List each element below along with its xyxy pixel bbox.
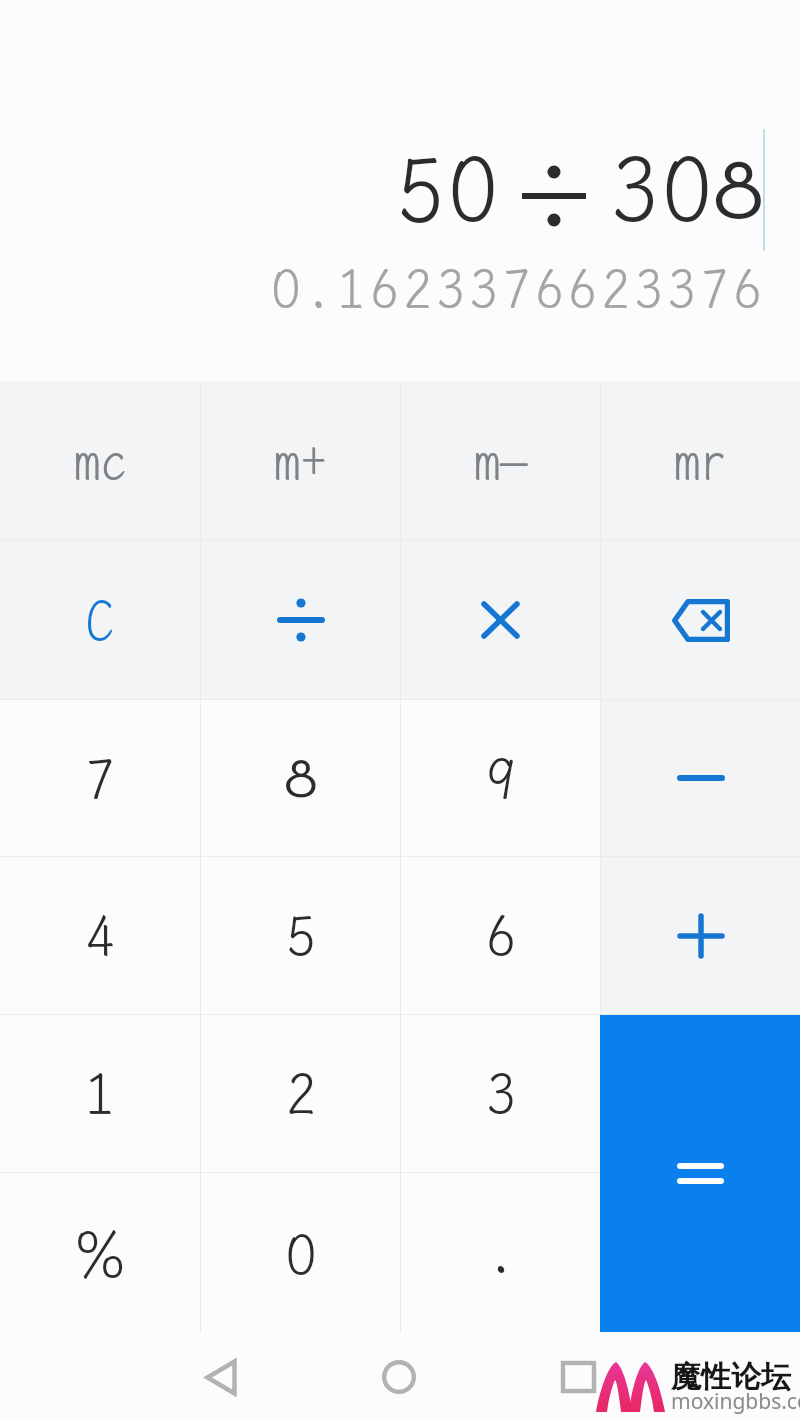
staticText: 0 (660, 128, 712, 247)
button[interactable]: Back (181, 1337, 261, 1417)
staticText: 3 (668, 258, 695, 320)
button[interactable]: Plus (601, 857, 800, 1014)
staticText: 魔性论坛 (671, 1358, 791, 1396)
staticText: 8 (713, 131, 764, 240)
button[interactable]: mc (0, 381, 200, 540)
button[interactable]: 7 (0, 700, 200, 856)
button[interactable]: Backspace (601, 541, 800, 699)
staticText: 6 (371, 258, 398, 320)
staticText: 1 (338, 258, 365, 320)
button[interactable]: Divide (201, 541, 400, 699)
staticText: mr (674, 430, 727, 492)
button[interactable]: % (0, 1173, 200, 1332)
button[interactable]: Minus (601, 700, 800, 856)
button[interactable]: . (401, 1173, 600, 1332)
staticText: 6 (487, 903, 515, 968)
staticText: 0 (446, 128, 498, 247)
button[interactable]: 4 (0, 857, 200, 1014)
button[interactable]: 5 (201, 857, 400, 1014)
staticText: 5 (287, 903, 315, 968)
button[interactable]: 2 (201, 1015, 400, 1172)
button[interactable]: 8 (201, 700, 400, 856)
staticText: % (74, 1211, 126, 1295)
staticText: 2 (287, 1061, 315, 1126)
staticText: 6 (569, 258, 596, 320)
staticText: 3 (437, 258, 464, 320)
button[interactable]: C (0, 541, 200, 699)
button[interactable]: 6 (401, 857, 600, 1014)
staticText: . (487, 1220, 515, 1285)
button[interactable]: mr (601, 381, 800, 540)
button[interactable]: 3 (401, 1015, 600, 1172)
staticText: 0 (270, 252, 302, 322)
staticText: 1 (86, 1061, 114, 1126)
staticText: m– (474, 430, 527, 492)
button[interactable]: Home (359, 1337, 439, 1417)
staticText: 7 (503, 258, 530, 320)
staticText: 7 (86, 746, 114, 811)
button[interactable]: Equals (600, 1015, 800, 1332)
staticText: moxingbbs.com (671, 1387, 800, 1416)
staticText: 3 (612, 137, 657, 242)
staticText: 6 (734, 258, 761, 320)
staticText: 2 (602, 258, 629, 320)
staticText: 5 (398, 137, 443, 242)
staticText: 7 (701, 258, 728, 320)
staticText: C (86, 588, 114, 653)
button[interactable]: Recent apps (538, 1337, 618, 1417)
staticText: 3 (470, 258, 497, 320)
staticText: 4 (86, 903, 114, 968)
staticText: 8 (284, 740, 318, 811)
staticText: 9 (487, 746, 515, 811)
button[interactable]: 1 (0, 1015, 200, 1172)
button[interactable]: Multiply (401, 541, 600, 699)
staticText: . (305, 258, 332, 320)
staticText: m+ (274, 430, 327, 492)
button[interactable]: 0 (201, 1173, 400, 1332)
staticText: 0 (284, 1216, 318, 1290)
staticText: 2 (404, 258, 431, 320)
button[interactable]: 9 (401, 700, 600, 856)
staticText: 6 (536, 258, 563, 320)
staticText: mc (74, 430, 127, 492)
staticText: 3 (635, 258, 662, 320)
button[interactable]: m+ (201, 381, 400, 540)
staticText: 3 (487, 1061, 515, 1126)
button[interactable]: m– (401, 381, 600, 540)
